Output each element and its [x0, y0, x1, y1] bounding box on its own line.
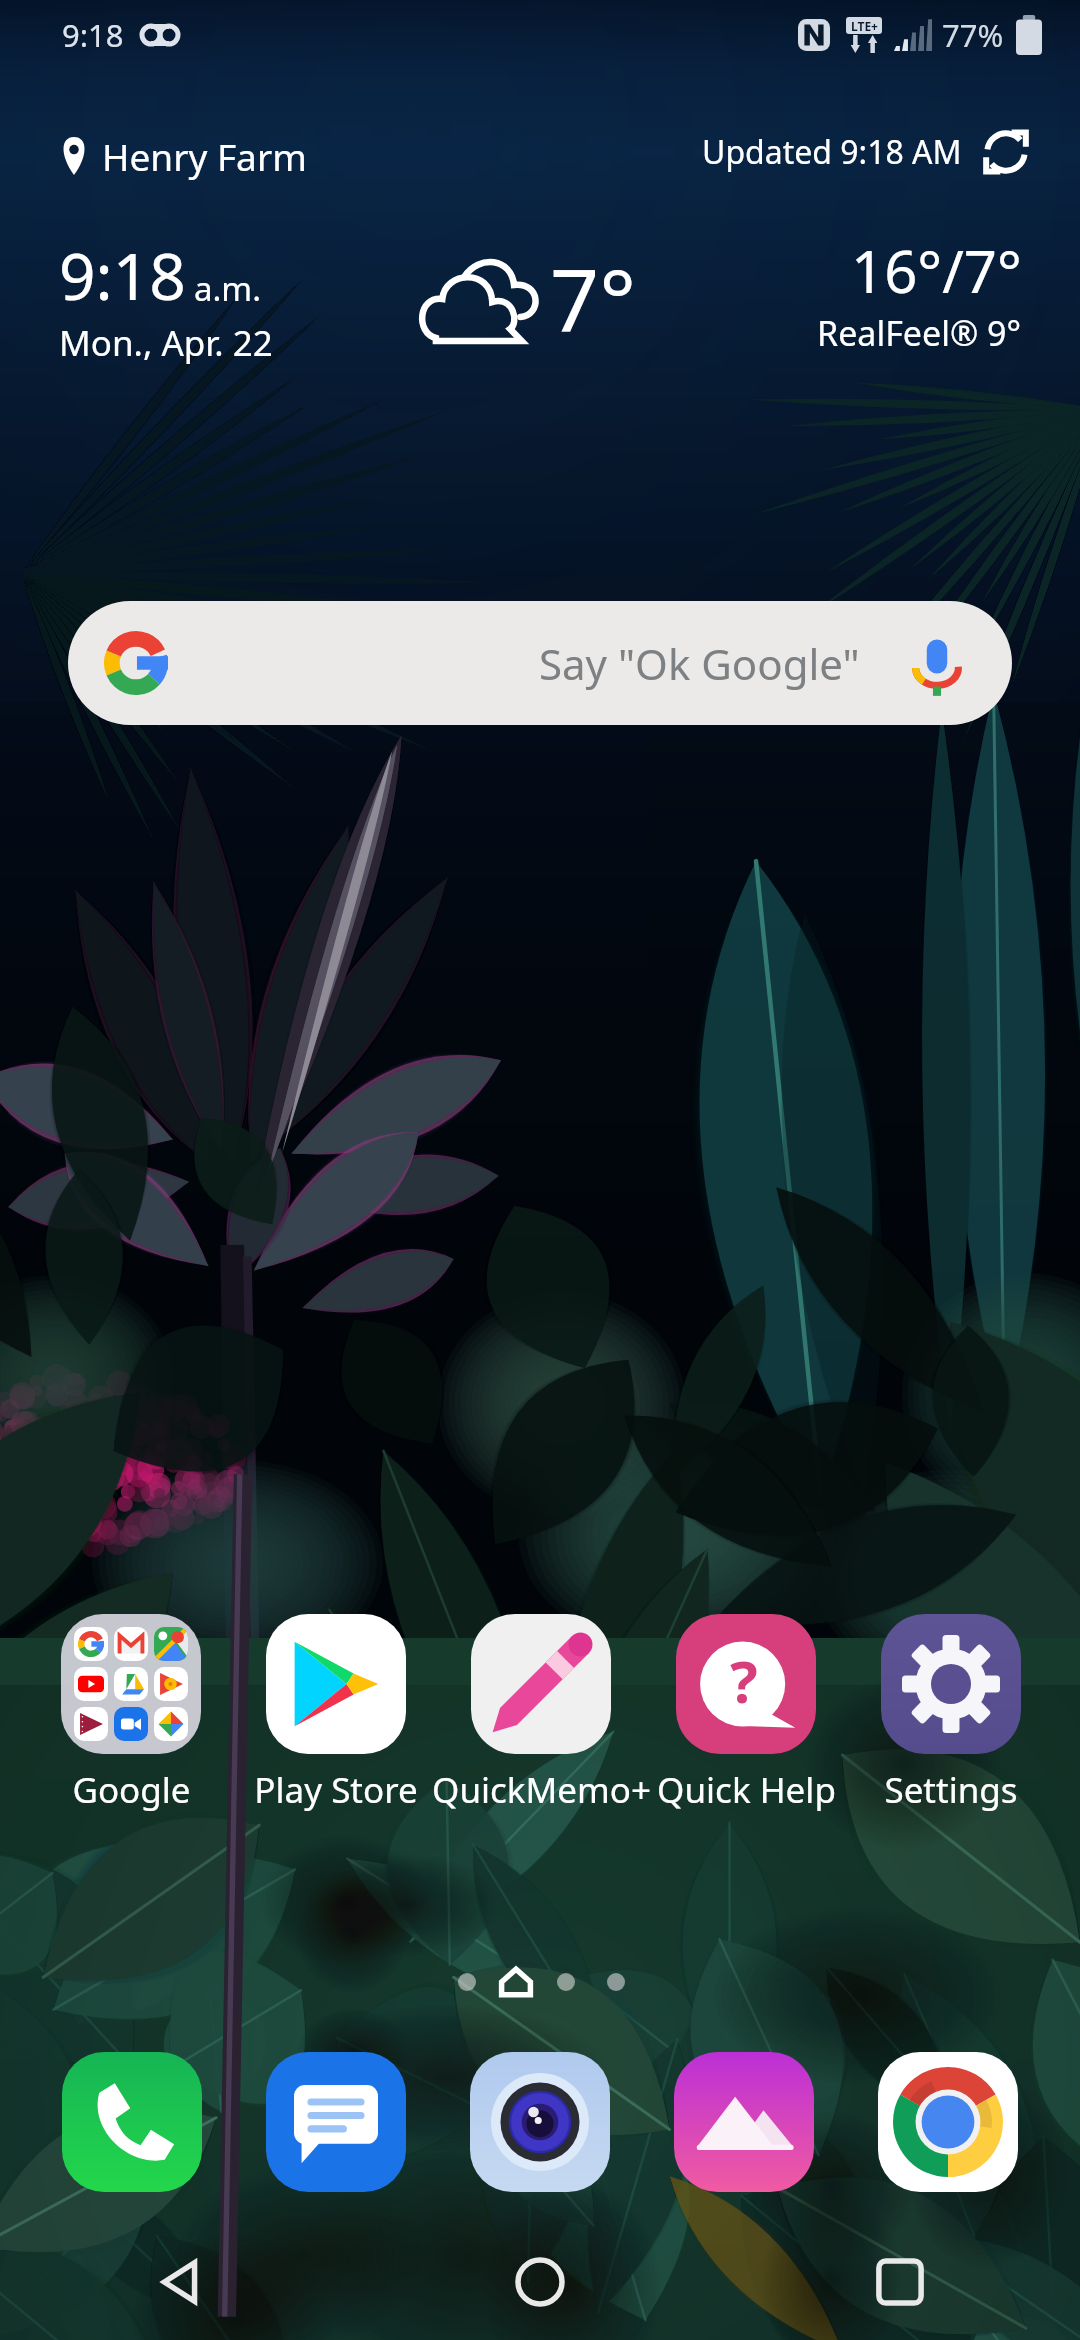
staticText: Henry Farm: [102, 131, 307, 181]
staticText: Mon., Apr. 22: [59, 319, 273, 367]
button[interactable]: Say "Ok Google": [68, 601, 1012, 725]
staticText: Settings: [884, 1766, 1018, 1814]
button[interactable]: Phone: [62, 2052, 202, 2192]
staticText: Play Store: [254, 1766, 418, 1814]
button[interactable]: Home screen: [498, 1966, 534, 1998]
staticText: Updated 9:18 AM: [702, 130, 962, 174]
button[interactable]: Page: [458, 1973, 476, 1991]
button[interactable]: Back: [0, 2224, 360, 2340]
staticText: QuickMemo+: [432, 1766, 651, 1814]
staticText: LTE+: [851, 18, 878, 34]
staticText: 77%: [942, 14, 1004, 56]
button[interactable]: QuickMemo+: [416, 1614, 666, 1818]
staticText: Quick Help: [657, 1766, 836, 1814]
button[interactable]: Recents: [720, 2224, 1080, 2340]
staticText: RealFeel® 9°: [817, 310, 1022, 356]
button[interactable]: ?: [621, 1614, 871, 1818]
button[interactable]: Henry Farm: [60, 131, 307, 181]
button[interactable]: Play Store: [211, 1614, 461, 1818]
staticText: 9:18: [62, 14, 124, 56]
button[interactable]: Settings: [826, 1614, 1076, 1818]
button[interactable]: Page: [557, 1973, 575, 1991]
staticText: a.m.: [194, 266, 262, 311]
button[interactable]: Chrome: [878, 2052, 1018, 2192]
button[interactable]: Camera: [470, 2052, 610, 2192]
staticText: 7°: [550, 240, 636, 357]
button[interactable]: Page: [607, 1973, 625, 1991]
staticText: 9:18: [59, 232, 186, 319]
button[interactable]: Messages: [266, 2052, 406, 2192]
staticText: Say "Ok Google": [539, 635, 860, 692]
button[interactable]: Gallery: [674, 2052, 814, 2192]
staticText: 16°/7°: [851, 231, 1022, 310]
staticText: ?: [730, 1641, 758, 1720]
staticText: Google: [72, 1766, 191, 1814]
button[interactable]: Refresh weather, updated 9:18 AM: [702, 126, 1032, 178]
button[interactable]: Voice search: [902, 628, 972, 698]
button[interactable]: Home: [360, 2224, 720, 2340]
button[interactable]: Google: [6, 1614, 256, 1818]
